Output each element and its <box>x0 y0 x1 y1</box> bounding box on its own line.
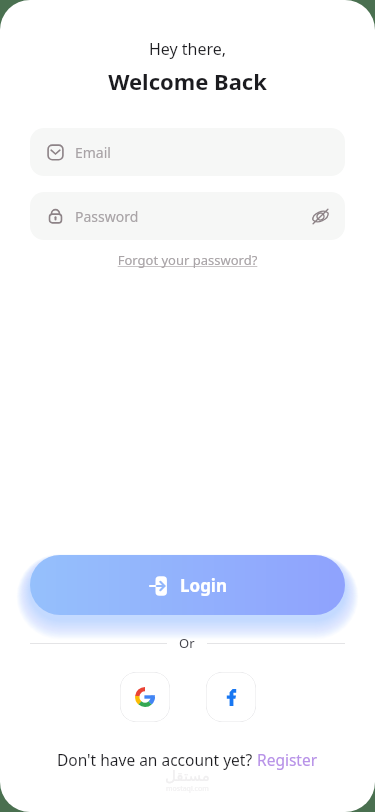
staticText: mostaql.com <box>166 784 209 794</box>
button[interactable]: Show password <box>307 203 333 229</box>
button[interactable]: Login <box>30 555 345 615</box>
staticText: Password <box>75 207 139 226</box>
staticText: Or <box>179 634 195 652</box>
button[interactable]: Register <box>257 749 318 770</box>
staticText: مستقل <box>165 767 210 784</box>
button[interactable]: Forgot your password? <box>0 251 375 269</box>
button[interactable]: Password <box>30 192 345 240</box>
button[interactable]: Email <box>30 128 345 176</box>
button[interactable]: Sign in with Google <box>120 672 170 722</box>
staticText: Login <box>180 574 228 597</box>
staticText: Email <box>75 143 111 162</box>
staticText: Welcome Back <box>0 66 375 96</box>
button[interactable]: Sign in with Facebook <box>206 672 256 722</box>
staticText: Hey there, <box>0 38 375 60</box>
staticText: Don't have an account yet? <box>57 749 257 770</box>
